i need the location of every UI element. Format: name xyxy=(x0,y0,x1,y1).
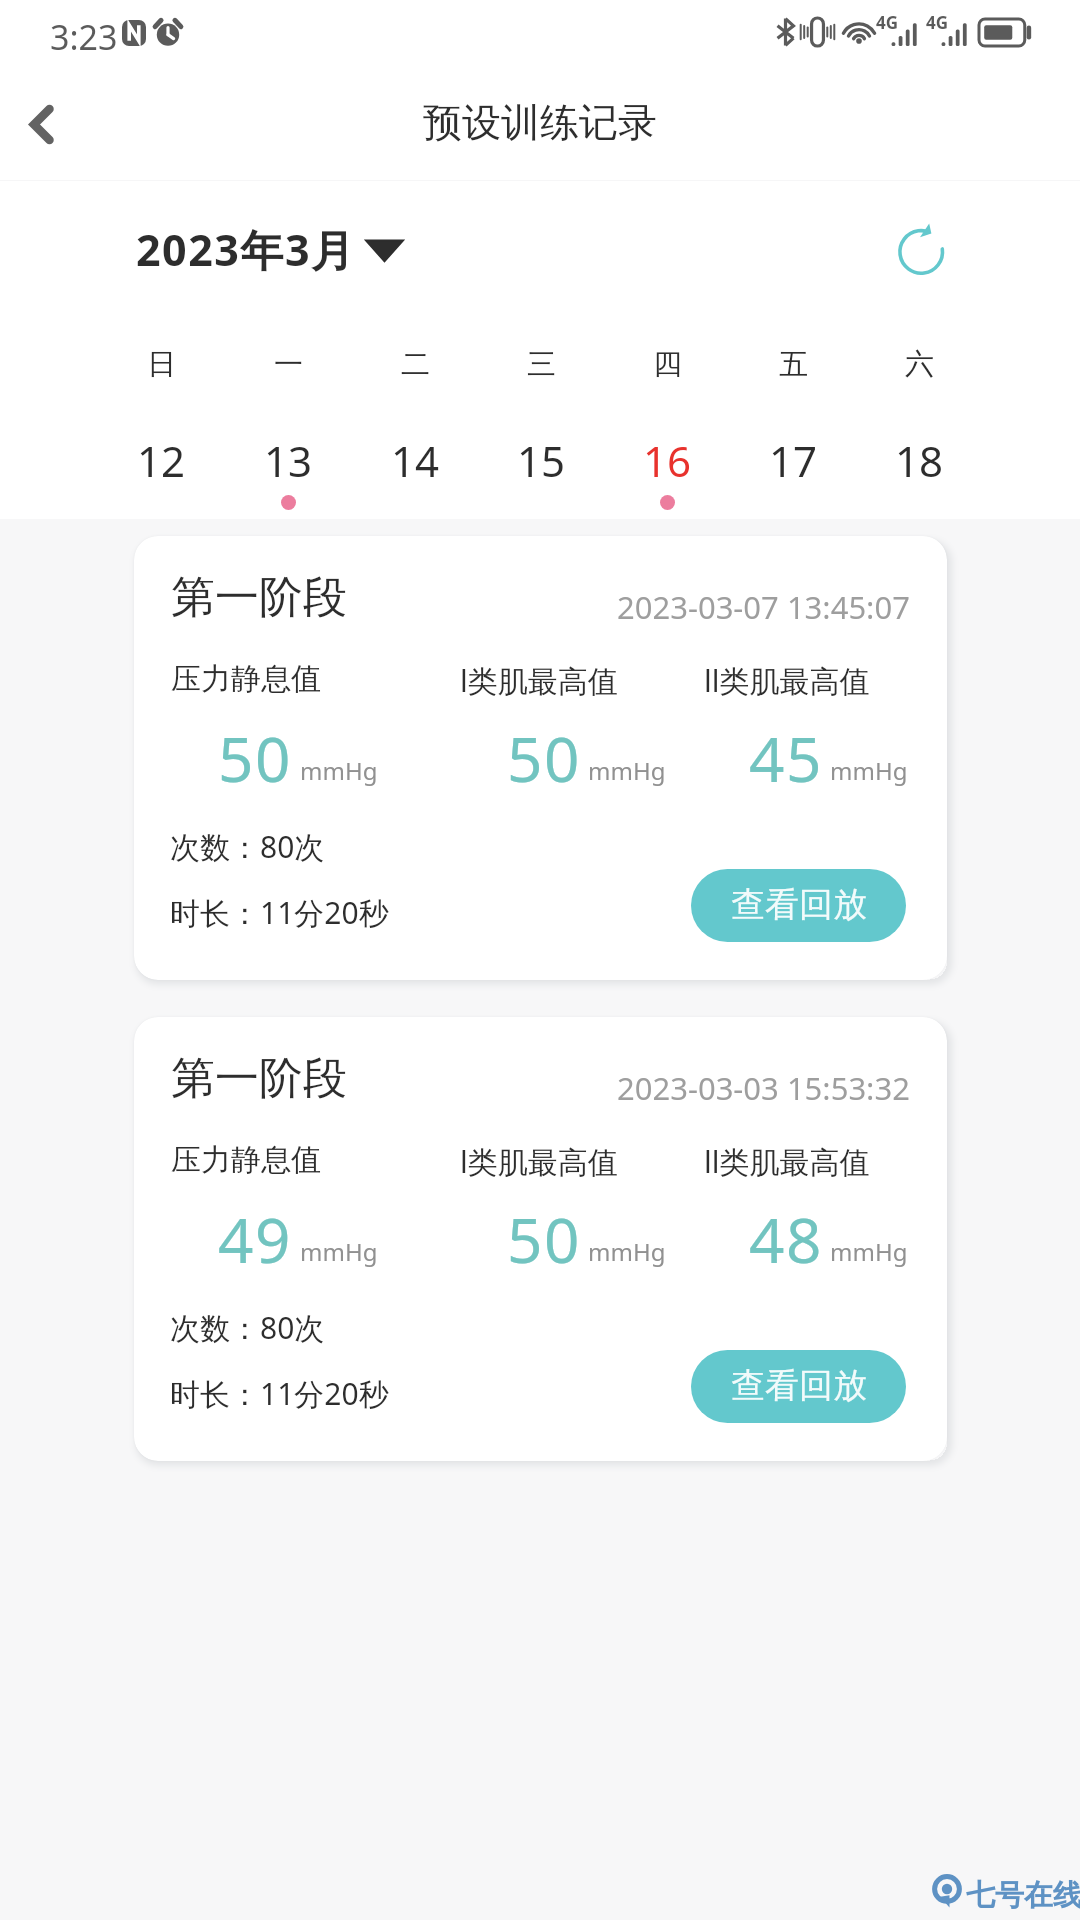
button[interactable]: 2023年3月 xyxy=(130,218,415,280)
staticText: 50 xyxy=(507,1197,581,1281)
staticText: 五 xyxy=(779,346,808,383)
staticText: ll类肌最高值 xyxy=(704,660,870,701)
staticText: 18 xyxy=(895,432,944,489)
button[interactable]: 17 xyxy=(730,432,856,495)
staticText: 次数：80次 xyxy=(170,826,325,867)
staticText: 3:23 xyxy=(50,14,118,60)
staticText: 2023-03-03 15:53:32 xyxy=(617,1067,910,1109)
staticText: 49 xyxy=(218,1197,292,1281)
staticText: 时长：11分20秒 xyxy=(170,892,389,933)
staticText: 时长：11分20秒 xyxy=(170,1373,389,1414)
staticText: 二 xyxy=(401,346,430,383)
staticText: l类肌最高值 xyxy=(460,660,618,701)
staticText: 七号在线 xyxy=(966,1877,1080,1914)
staticText: 45 xyxy=(749,716,823,800)
button[interactable]: 查看回放 xyxy=(691,869,906,942)
staticText: 第一阶段 xyxy=(171,1051,347,1106)
staticText: mmHg xyxy=(830,754,908,787)
staticText: 一 xyxy=(274,346,303,383)
staticText: 查看回放 xyxy=(731,1364,867,1407)
staticText: 三 xyxy=(527,346,556,383)
staticText: 2023-03-07 13:45:07 xyxy=(617,586,910,628)
button[interactable]: 18 xyxy=(856,432,982,495)
staticText: 50 xyxy=(218,716,292,800)
staticText: mmHg xyxy=(300,754,378,787)
staticText: 13 xyxy=(264,432,313,489)
button[interactable]: 第一阶段 xyxy=(134,1017,947,1461)
staticText: 2023年3月 xyxy=(136,220,356,279)
staticText: 4G xyxy=(926,11,949,34)
button[interactable]: 16 xyxy=(604,432,730,510)
staticText: 15 xyxy=(517,432,566,489)
staticText: 第一阶段 xyxy=(171,570,347,625)
button[interactable]: Back xyxy=(2,75,94,167)
button[interactable]: 14 xyxy=(352,432,478,495)
button[interactable]: 查看回放 xyxy=(691,1350,906,1423)
button[interactable]: 12 xyxy=(98,432,225,495)
staticText: 50 xyxy=(507,716,581,800)
staticText: 14 xyxy=(391,432,440,489)
staticText: l类肌最高值 xyxy=(460,1141,618,1182)
button[interactable]: 15 xyxy=(478,432,604,495)
staticText: 12 xyxy=(137,432,186,489)
button[interactable]: Refresh xyxy=(889,220,953,284)
staticText: mmHg xyxy=(588,754,666,787)
staticText: 查看回放 xyxy=(731,883,867,926)
staticText: 压力静息值 xyxy=(171,1141,321,1179)
button[interactable]: 13 xyxy=(225,432,352,510)
staticText: 48 xyxy=(749,1197,823,1281)
staticText: mmHg xyxy=(300,1235,378,1268)
staticText: 四 xyxy=(653,346,682,383)
staticText: 17 xyxy=(769,432,818,489)
staticText: 次数：80次 xyxy=(170,1307,325,1348)
staticText: ll类肌最高值 xyxy=(704,1141,870,1182)
staticText: mmHg xyxy=(830,1235,908,1268)
staticText: 4G xyxy=(876,11,899,34)
staticText: 压力静息值 xyxy=(171,660,321,698)
staticText: 16 xyxy=(643,432,692,489)
staticText: mmHg xyxy=(588,1235,666,1268)
staticText: 预设训练记录 xyxy=(423,98,657,147)
button[interactable]: 第一阶段 xyxy=(134,536,947,980)
staticText: 日 xyxy=(147,346,176,383)
staticText: 六 xyxy=(905,346,934,383)
